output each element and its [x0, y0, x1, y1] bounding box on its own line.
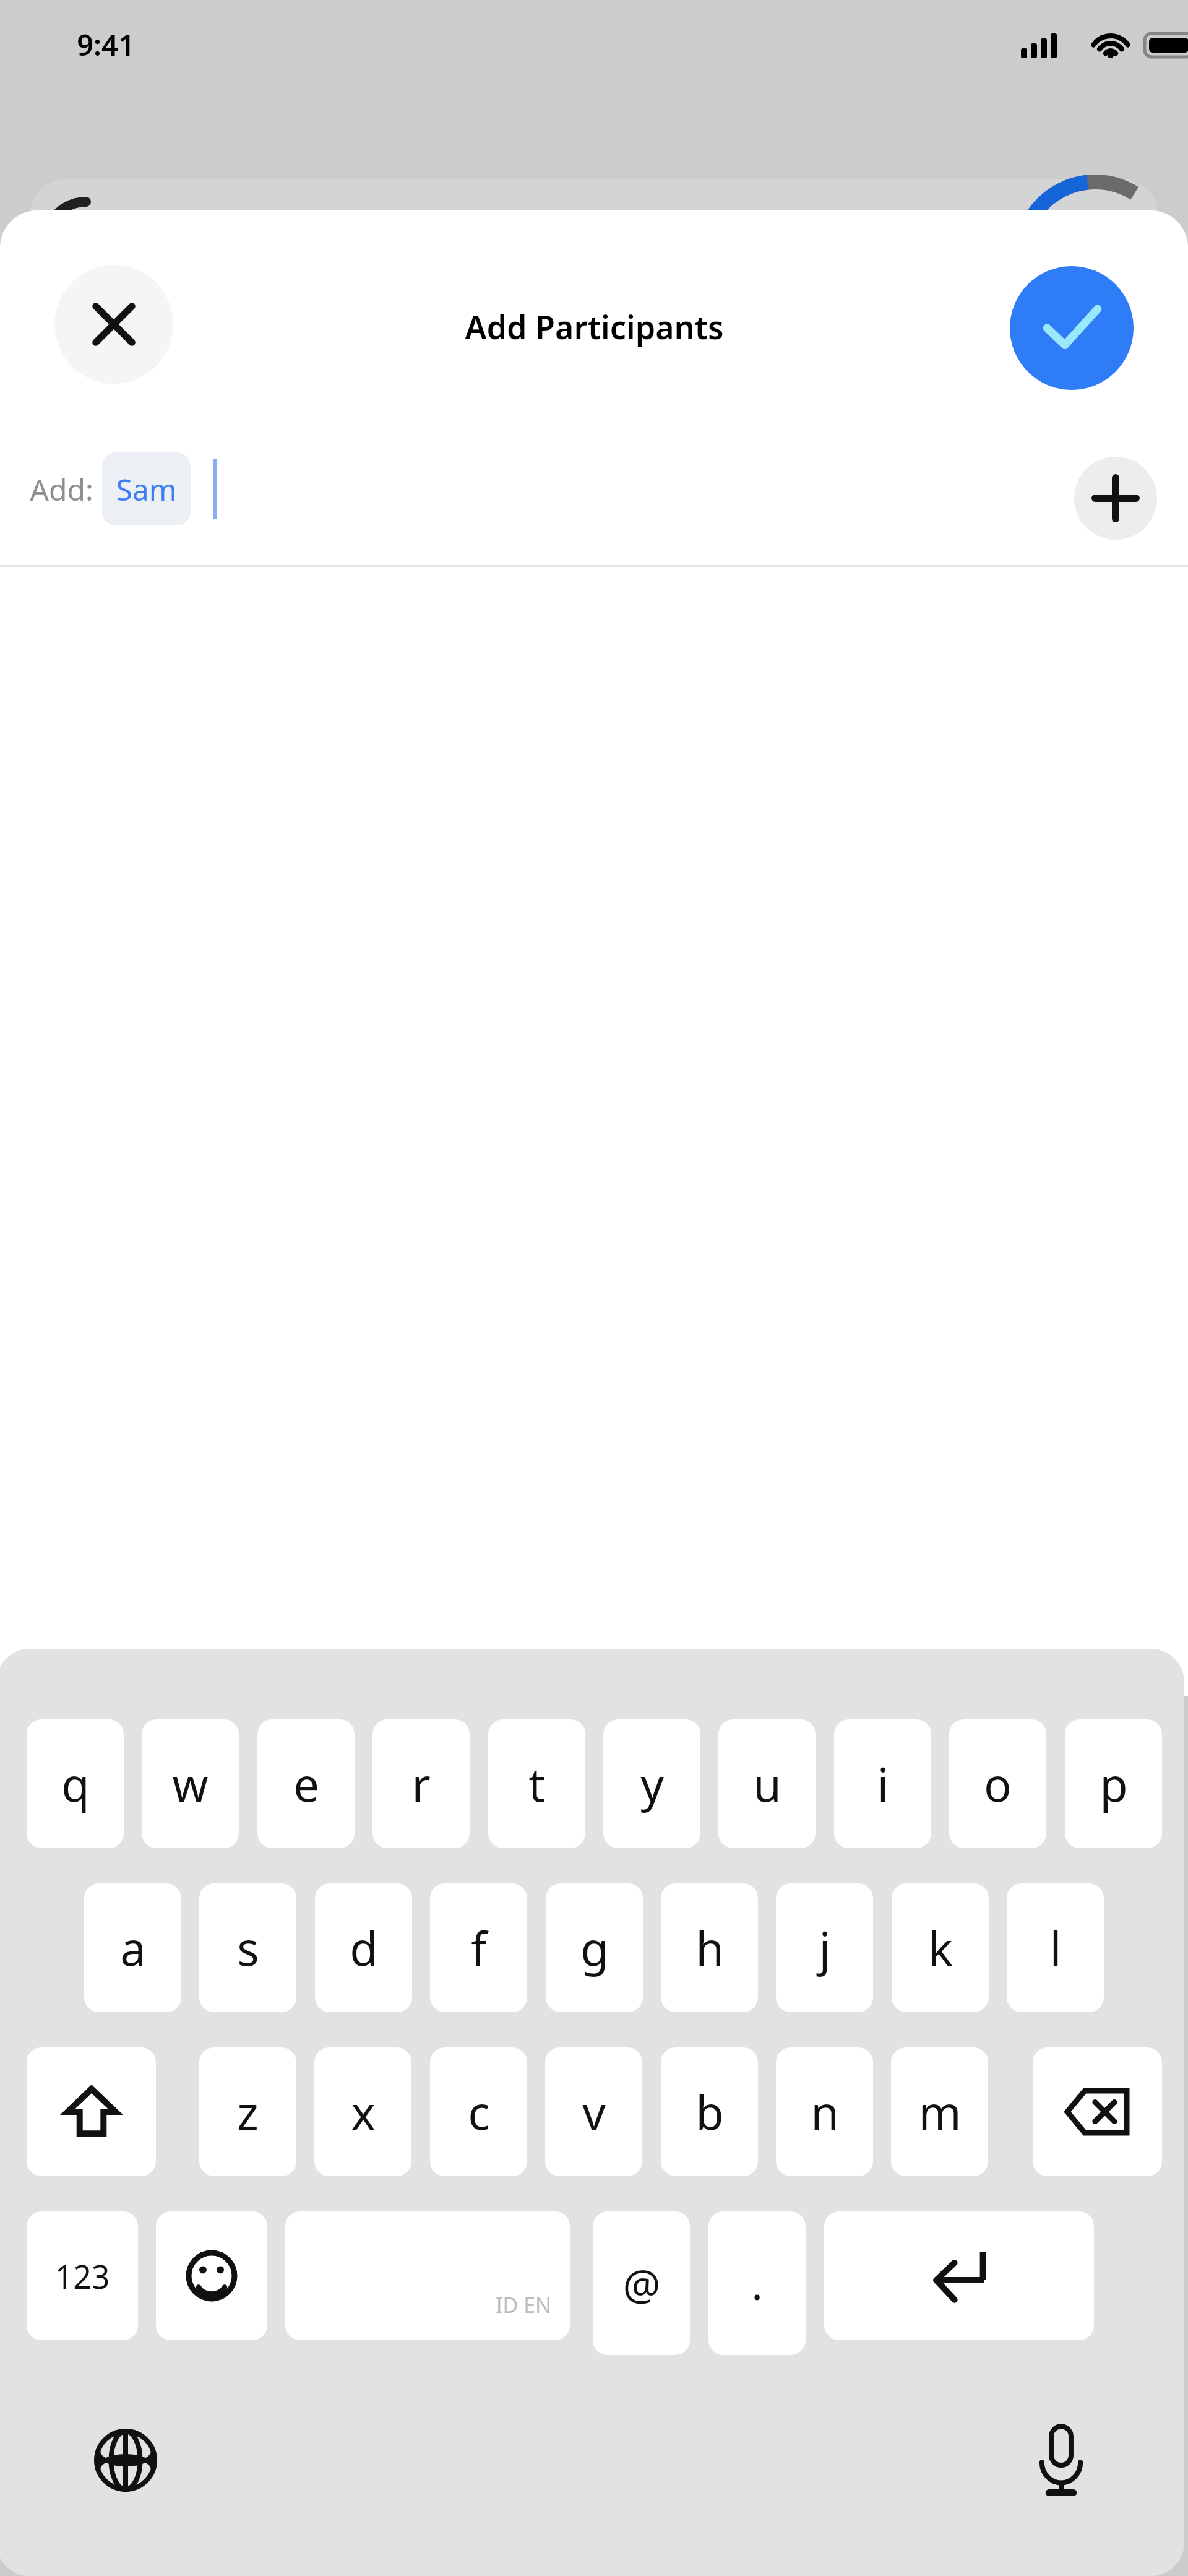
button[interactable]: m: [891, 2047, 988, 2176]
staticText: p: [1100, 1753, 1128, 1815]
staticText: @: [622, 2255, 661, 2312]
staticText: ID EN: [496, 2291, 551, 2319]
button[interactable]: .: [708, 2211, 806, 2355]
button[interactable]: l: [1007, 1883, 1104, 2012]
button[interactable]: j: [776, 1883, 873, 2012]
staticText: u: [753, 1753, 781, 1815]
staticText: i: [877, 1753, 889, 1815]
button[interactable]: b: [661, 2047, 758, 2176]
button[interactable]: Backspace: [1033, 2047, 1162, 2176]
button[interactable]: v: [545, 2047, 642, 2176]
button[interactable]: f: [430, 1883, 527, 2012]
button[interactable]: r: [372, 1719, 470, 1848]
staticText: z: [237, 2081, 259, 2143]
button[interactable]: h: [661, 1883, 758, 2012]
staticText: l: [1049, 1917, 1062, 1979]
button[interactable]: Return: [824, 2211, 1094, 2340]
button[interactable]: n: [776, 2047, 873, 2176]
button[interactable]: t: [488, 1719, 585, 1848]
staticText: k: [928, 1917, 953, 1979]
staticText: o: [984, 1753, 1012, 1815]
staticText: d: [350, 1917, 378, 1979]
button[interactable]: z: [199, 2047, 296, 2176]
staticText: x: [351, 2081, 376, 2143]
staticText: v: [582, 2081, 606, 2143]
button[interactable]: @: [593, 2211, 690, 2355]
staticText: m: [918, 2081, 962, 2143]
staticText: j: [819, 1917, 831, 1979]
staticText: f: [471, 1917, 487, 1979]
staticText: w: [172, 1753, 209, 1815]
staticText: c: [468, 2081, 490, 2143]
staticText: q: [61, 1753, 90, 1815]
button[interactable]: c: [430, 2047, 527, 2176]
button[interactable]: Add contact: [1074, 457, 1157, 540]
staticText: r: [411, 1753, 431, 1815]
staticText: 123: [54, 2254, 110, 2298]
button[interactable]: Done: [1010, 266, 1134, 390]
button[interactable]: Sam: [102, 452, 191, 525]
button[interactable]: x: [314, 2047, 411, 2176]
button[interactable]: i: [834, 1719, 931, 1848]
button[interactable]: Shift: [27, 2047, 156, 2176]
button[interactable]: s: [199, 1883, 296, 2012]
staticText: a: [120, 1917, 146, 1979]
button[interactable]: Change keyboard: [79, 2414, 172, 2507]
button[interactable]: o: [949, 1719, 1046, 1848]
staticText: t: [528, 1753, 545, 1815]
button[interactable]: k: [892, 1883, 989, 2012]
staticText: b: [695, 2081, 724, 2143]
staticText: Add Participants: [465, 305, 724, 348]
button[interactable]: g: [546, 1883, 643, 2012]
button[interactable]: y: [603, 1719, 700, 1848]
button[interactable]: d: [315, 1883, 412, 2012]
button[interactable]: 123: [27, 2211, 138, 2340]
staticText: s: [237, 1917, 259, 1979]
staticText: h: [695, 1917, 724, 1979]
button[interactable]: w: [142, 1719, 239, 1848]
button[interactable]: a: [84, 1883, 181, 2012]
staticText: Add:: [30, 469, 93, 509]
button[interactable]: Close: [54, 265, 173, 384]
staticText: Sam: [116, 469, 177, 509]
button[interactable]: q: [27, 1719, 124, 1848]
button[interactable]: u: [718, 1719, 816, 1848]
button[interactable]: Emoji: [156, 2211, 267, 2340]
button[interactable]: Space: [285, 2211, 570, 2340]
button[interactable]: Dictate: [1015, 2414, 1108, 2507]
button[interactable]: e: [257, 1719, 355, 1848]
staticText: n: [811, 2081, 839, 2143]
staticText: y: [640, 1753, 664, 1815]
button[interactable]: p: [1065, 1719, 1162, 1848]
staticText: g: [580, 1917, 609, 1979]
staticText: .: [751, 2255, 763, 2312]
staticText: e: [293, 1753, 319, 1815]
staticText: 9:41: [77, 25, 135, 64]
